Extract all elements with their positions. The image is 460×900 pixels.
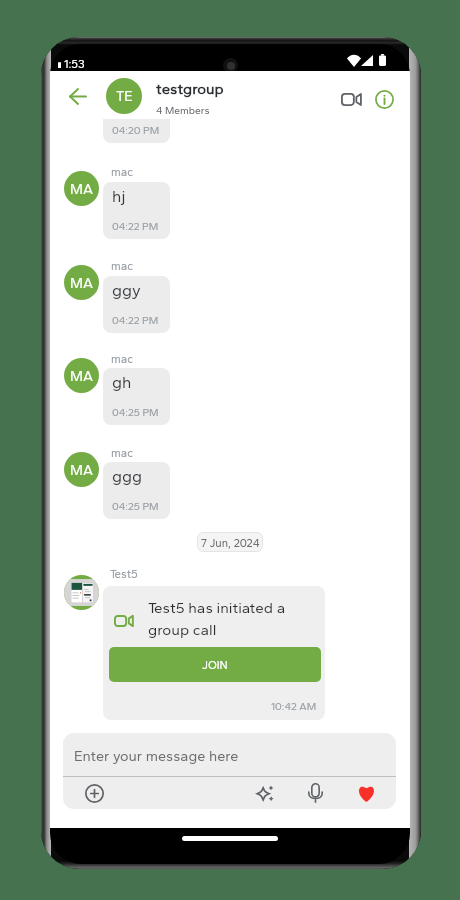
staticText: mac <box>111 352 134 366</box>
staticText: gh <box>112 372 132 392</box>
button[interactable]: Smart reply <box>253 781 277 805</box>
staticText: 7 Jun, 2024 <box>201 536 260 549</box>
button[interactable]: ggg <box>103 462 170 519</box>
staticText: Test5 has initiated a group call <box>148 599 286 639</box>
button[interactable]: mac avatar <box>64 171 99 206</box>
button[interactable]: Group info <box>367 82 401 116</box>
staticText: Enter your message here <box>74 747 239 764</box>
button[interactable]: Send heart <box>354 781 378 805</box>
staticText: mac <box>111 165 134 179</box>
button[interactable]: Voice message <box>303 781 327 805</box>
staticText: 04:22 PM <box>112 314 159 327</box>
staticText: 10:42 AM <box>271 700 317 713</box>
staticText: mac <box>111 446 134 460</box>
staticText: 04:25 PM <box>112 406 159 419</box>
staticText: ggg <box>112 466 143 486</box>
button[interactable]: Group avatar <box>106 78 142 114</box>
button[interactable]: mac avatar <box>64 358 99 393</box>
staticText: 1:53 <box>64 57 85 71</box>
staticText: MA <box>70 180 93 197</box>
staticText: MA <box>70 274 93 291</box>
staticText: MA <box>70 461 93 478</box>
button[interactable]: Back <box>61 79 95 113</box>
button[interactable]: Enter your message here <box>74 747 239 764</box>
staticText: 04:25 PM <box>112 500 159 513</box>
staticText: hj <box>112 186 126 206</box>
staticText: MA <box>70 367 93 384</box>
button[interactable]: Add attachment <box>82 781 106 805</box>
button[interactable]: 04:20 PM <box>103 86 170 143</box>
button[interactable]: ggy <box>103 276 170 333</box>
button[interactable]: Video call <box>334 82 368 116</box>
staticText: testgroup <box>156 80 224 98</box>
staticText: ggy <box>112 280 141 300</box>
staticText: 4 Members <box>156 104 210 116</box>
staticText: 04:20 PM <box>112 124 160 137</box>
staticText: Test5 <box>110 567 138 581</box>
button[interactable]: mac avatar <box>64 265 99 300</box>
staticText: mac <box>111 259 134 273</box>
button[interactable]: JOIN <box>109 647 321 682</box>
button[interactable]: mac avatar <box>64 452 99 487</box>
staticText: JOIN <box>202 658 228 672</box>
button[interactable]: hj <box>103 182 170 239</box>
button[interactable]: gh <box>103 368 170 425</box>
staticText: TE <box>116 88 133 105</box>
staticText: 04:22 PM <box>112 220 159 233</box>
